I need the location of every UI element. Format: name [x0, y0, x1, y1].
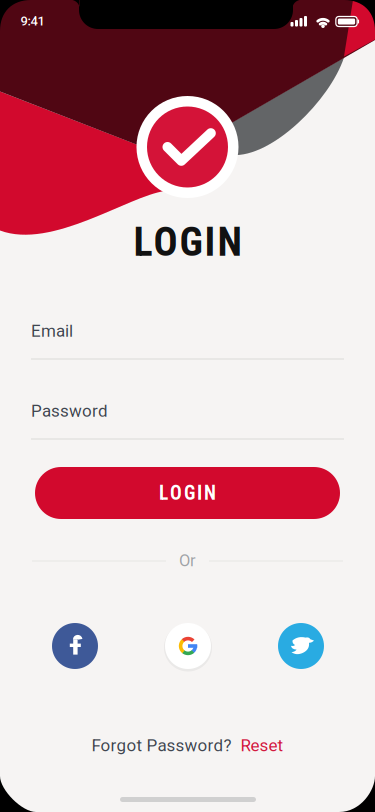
- staticText: Email: [31, 321, 73, 341]
- button[interactable]: Sign in with Facebook: [52, 623, 98, 669]
- staticText: LOGIN: [133, 219, 241, 265]
- staticText: 9:41: [20, 13, 44, 29]
- button[interactable]: Sign in with Twitter: [278, 623, 324, 669]
- staticText: L O G I N: [159, 482, 216, 504]
- staticText: Forgot Password?: [91, 735, 231, 755]
- staticText: Password: [31, 401, 108, 421]
- button[interactable]: Sign in with Google: [165, 623, 211, 669]
- button[interactable]: L O G I N: [35, 467, 340, 519]
- staticText: Or: [179, 551, 196, 570]
- button[interactable]: Forgot Password?: [91, 735, 283, 755]
- staticText: Reset: [240, 735, 283, 755]
